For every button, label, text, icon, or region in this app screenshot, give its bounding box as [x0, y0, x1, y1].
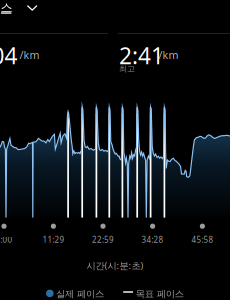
staticText: /km — [158, 48, 178, 62]
button[interactable]: 실제 페이스 — [46, 286, 106, 300]
staticText: 11:29 — [42, 234, 64, 245]
staticText: 실제 페이스 — [56, 288, 104, 300]
button[interactable]: 목표 페이스 — [123, 286, 179, 300]
staticText: 22:59 — [92, 234, 114, 245]
staticText: 시간(시:분:초) — [86, 259, 143, 272]
staticText: /km — [20, 48, 40, 62]
staticText: 최고 — [119, 64, 135, 74]
staticText: 45:58 — [191, 234, 213, 245]
staticText: 목표 페이스 — [136, 288, 184, 300]
staticText: 0:00 — [0, 234, 12, 245]
button[interactable]: Change metric: pace — [0, 0, 44, 22]
staticText: 34:28 — [142, 234, 164, 245]
staticText: 5:04 — [0, 40, 18, 71]
staticText: 2:41 — [119, 40, 164, 71]
staticText: 스 — [1, 0, 13, 15]
